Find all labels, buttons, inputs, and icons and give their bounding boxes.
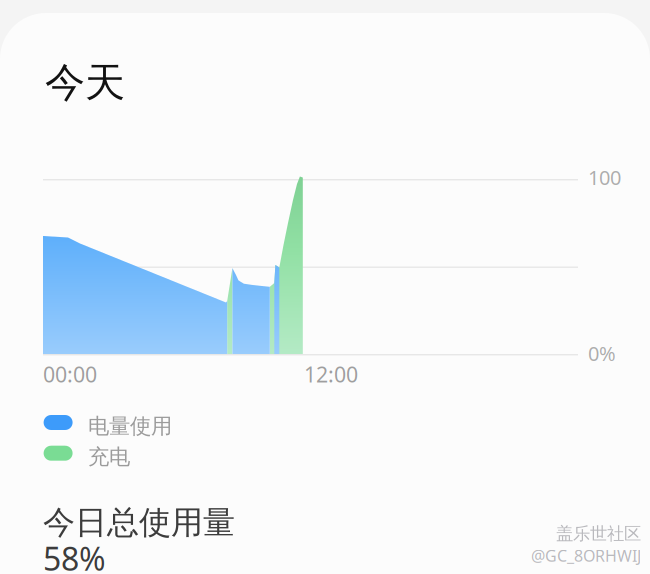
button[interactable]: 今日总使用量	[43, 503, 523, 574]
staticText: 100	[588, 164, 621, 191]
button[interactable]: 充电	[44, 442, 244, 466]
button[interactable]: 今天	[45, 58, 165, 102]
staticText: 电量使用	[88, 413, 172, 439]
button[interactable]: 电量使用	[44, 411, 244, 435]
staticText: 0%	[588, 340, 616, 367]
staticText: 00:00	[43, 360, 97, 388]
staticText: 12:00	[304, 360, 358, 388]
staticText: 充电	[88, 444, 130, 470]
staticText: @GC_8ORHWIJ	[531, 545, 641, 566]
staticText: 盖乐世社区	[556, 523, 641, 544]
staticText: 58%	[43, 537, 106, 574]
staticText: 今天	[45, 58, 125, 107]
staticText: 今日总使用量	[43, 503, 235, 542]
